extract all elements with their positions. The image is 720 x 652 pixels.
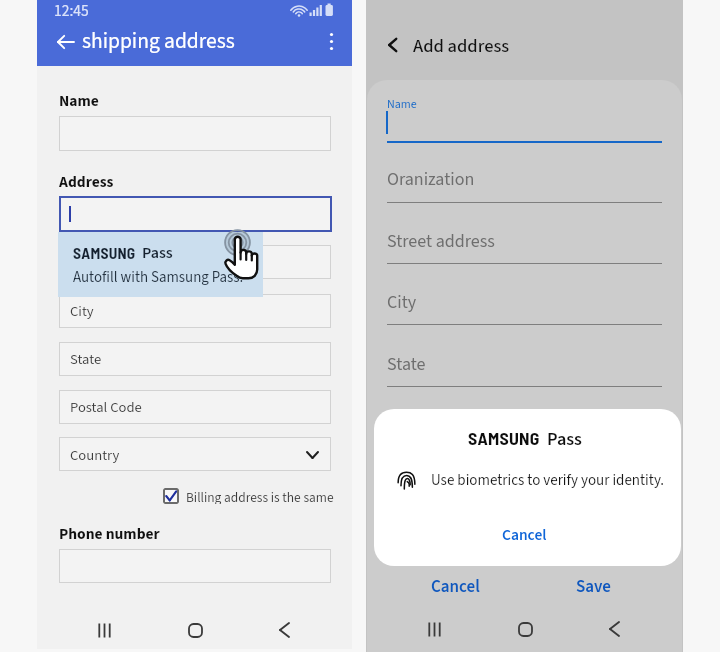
staticText: Name: [59, 90, 99, 112]
staticText: Save: [576, 575, 611, 599]
button[interactable]: Back: [50, 26, 82, 58]
staticText: 12:45: [54, 0, 89, 22]
button[interactable]: Home: [504, 609, 546, 649]
staticText: City: [70, 301, 94, 322]
staticText: Cancel: [431, 575, 480, 599]
staticText: Street address: [387, 229, 495, 255]
button[interactable]: State: [59, 342, 331, 376]
button[interactable]: SAMSUNG: [58, 232, 263, 297]
button[interactable]: Back: [380, 31, 408, 59]
staticText: City: [387, 290, 417, 316]
staticText: Billing address is the same: [186, 488, 334, 504]
button[interactable]: City: [59, 294, 331, 328]
staticText: Country: [70, 445, 120, 466]
staticText: Pass: [547, 426, 582, 452]
button[interactable]: Back: [593, 609, 635, 649]
button[interactable]: Back: [263, 611, 305, 649]
button[interactable]: Postal Code: [59, 390, 331, 424]
staticText: Pass: [142, 242, 173, 265]
button[interactable]: Country: [59, 437, 331, 471]
staticText: Address: [59, 171, 114, 193]
staticText: State: [70, 349, 102, 370]
staticText: State: [387, 352, 426, 378]
staticText: Autofill with Samsung Pass.: [73, 267, 244, 288]
staticText: Cancel: [502, 524, 547, 546]
button[interactable]: Cancel: [492, 521, 557, 549]
staticText: Add address: [413, 33, 510, 59]
button[interactable]: Save: [566, 572, 621, 602]
button[interactable]: More options: [315, 25, 348, 58]
button[interactable]: Cancel: [421, 572, 490, 602]
button[interactable]: Billing address is the same: [163, 488, 334, 504]
button[interactable]: [59, 196, 332, 232]
button[interactable]: [59, 116, 331, 151]
staticText: SAMSUNG: [73, 243, 136, 262]
staticText: Use biometrics to verify your identity.: [431, 470, 665, 491]
button[interactable]: Home: [174, 611, 216, 649]
staticText: Oranization: [387, 167, 475, 193]
button[interactable]: Recents: [414, 609, 456, 649]
staticText: Phone number: [59, 523, 160, 545]
button[interactable]: [59, 245, 331, 279]
staticText: shipping address: [82, 26, 235, 57]
staticText: Name: [387, 96, 417, 113]
staticText: SAMSUNG: [468, 427, 540, 448]
button[interactable]: [59, 549, 331, 583]
button[interactable]: Recents: [84, 611, 126, 649]
staticText: Postal Code: [70, 397, 142, 418]
